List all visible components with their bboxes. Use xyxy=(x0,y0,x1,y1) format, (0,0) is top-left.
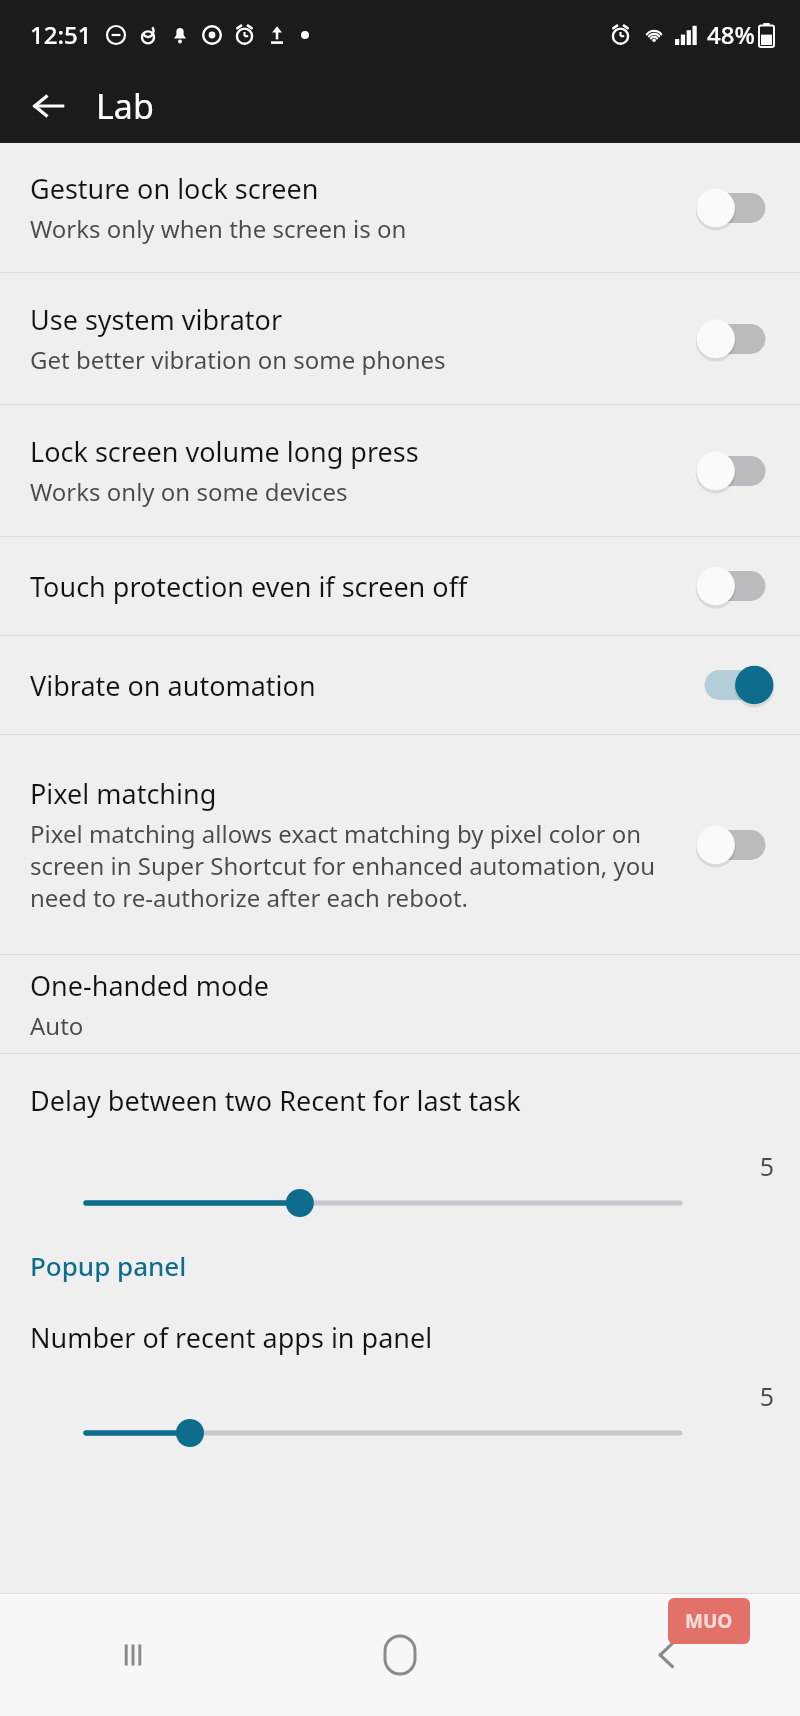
staticText: One-handed mode xyxy=(30,967,270,1004)
button[interactable]: Back xyxy=(533,1594,800,1716)
button[interactable]: One-handed mode xyxy=(0,955,800,1053)
button[interactable]: Home xyxy=(266,1594,533,1716)
button[interactable]: Toggle off xyxy=(696,821,774,869)
staticText: 12:51 xyxy=(30,18,92,51)
button[interactable]: Pixel matching xyxy=(0,735,800,954)
button[interactable]: Toggle off xyxy=(696,315,774,363)
button[interactable]: Toggle off xyxy=(696,562,774,610)
button[interactable] xyxy=(86,1403,680,1463)
staticText: Works only when the screen is on xyxy=(30,212,407,245)
button[interactable]: Toggle off xyxy=(696,184,774,232)
button[interactable]: Gesture on lock screen xyxy=(0,143,800,272)
staticText: 5 xyxy=(759,1379,774,1413)
staticText: Lock screen volume long press xyxy=(30,433,419,470)
staticText: Gesture on lock screen xyxy=(30,170,319,207)
staticText: Number of recent apps in panel xyxy=(30,1319,433,1356)
staticText: Works only on some devices xyxy=(30,475,348,508)
staticText: Pixel matching xyxy=(30,775,217,812)
button[interactable]: Lock screen volume long press xyxy=(0,405,800,536)
staticText: Auto xyxy=(30,1009,84,1042)
staticText: Lab xyxy=(96,83,154,129)
staticText: 48% xyxy=(707,18,755,51)
staticText: Popup panel xyxy=(30,1248,187,1283)
button[interactable]: Toggle off xyxy=(696,447,774,495)
staticText: Vibrate on automation xyxy=(30,667,316,704)
staticText: Delay between two Recent for last task xyxy=(30,1082,521,1119)
staticText: Get better vibration on some phones xyxy=(30,343,446,376)
button[interactable]: Toggle on xyxy=(696,661,774,709)
button[interactable]: Use system vibrator xyxy=(0,273,800,404)
staticText: Touch protection even if screen off xyxy=(30,568,468,605)
staticText: 5 xyxy=(759,1149,774,1183)
button[interactable]: Recent apps xyxy=(0,1594,266,1716)
staticText: Pixel matching allows exact matching by … xyxy=(30,817,678,914)
button[interactable] xyxy=(86,1173,680,1233)
staticText: Use system vibrator xyxy=(30,301,283,338)
button[interactable]: Vibrate on automation xyxy=(0,636,800,734)
button[interactable]: Back xyxy=(18,75,80,137)
staticText: MUO xyxy=(685,1608,733,1634)
button[interactable]: Touch protection even if screen off xyxy=(0,537,800,635)
